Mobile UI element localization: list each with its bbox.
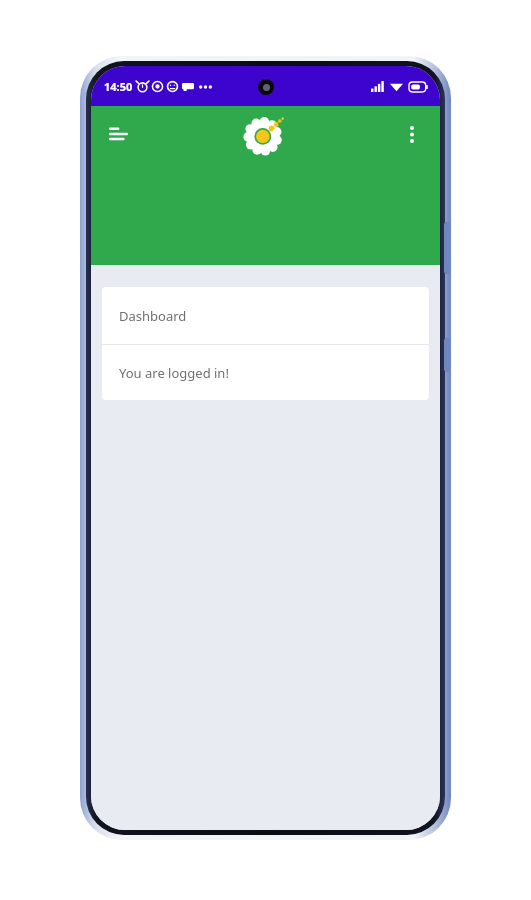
staticText: Dashboard: [119, 307, 187, 325]
other: Volume button: [444, 338, 450, 372]
button[interactable]: Open navigation menu: [97, 112, 141, 156]
staticText: You are logged in!: [119, 364, 229, 382]
button[interactable]: App logo: [243, 111, 289, 157]
other: Power button: [444, 222, 450, 274]
button[interactable]: More options: [390, 112, 434, 156]
button[interactable]: Dashboard: [102, 287, 429, 400]
staticText: 14:50: [104, 79, 133, 94]
